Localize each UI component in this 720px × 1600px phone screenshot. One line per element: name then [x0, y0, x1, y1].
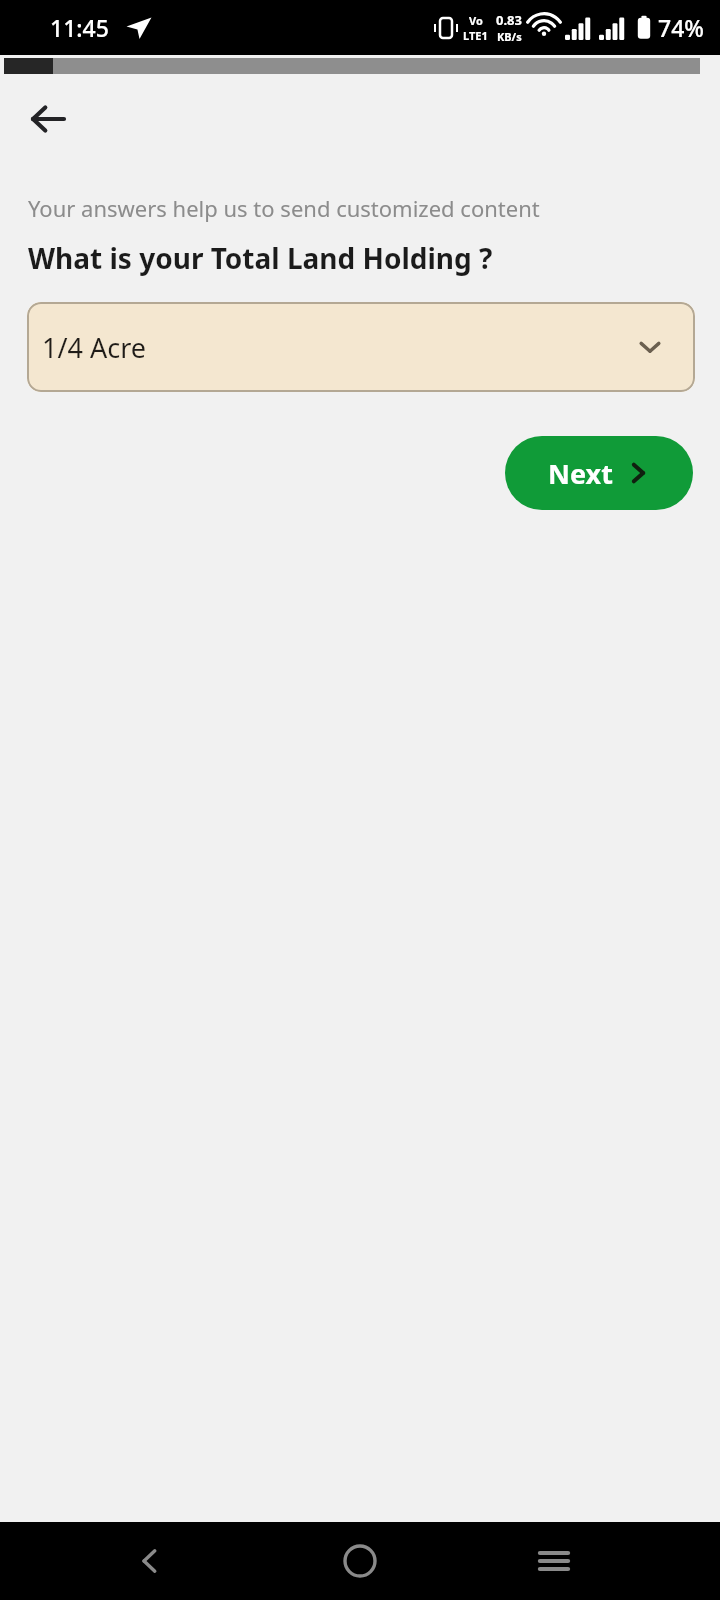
staticText: Next: [548, 455, 613, 492]
staticText: LTE1: [463, 28, 488, 43]
staticText: 11:45: [50, 12, 109, 43]
staticText: 74%: [658, 12, 704, 43]
staticText: What is your Total Land Holding ?: [28, 239, 493, 277]
staticText: 0.83: [496, 11, 522, 29]
staticText: Your answers help us to send customized …: [28, 193, 540, 223]
button[interactable]: Back: [18, 89, 78, 149]
button[interactable]: Home: [322, 1523, 398, 1599]
button[interactable]: Next: [505, 436, 693, 510]
button[interactable]: Recent apps: [516, 1523, 592, 1599]
button[interactable]: 1/4 Acre: [27, 302, 695, 392]
staticText: 1/4 Acre: [42, 329, 147, 366]
button[interactable]: Back: [112, 1523, 188, 1599]
staticText: KB/s: [497, 29, 522, 44]
staticText: Vo: [469, 13, 483, 28]
